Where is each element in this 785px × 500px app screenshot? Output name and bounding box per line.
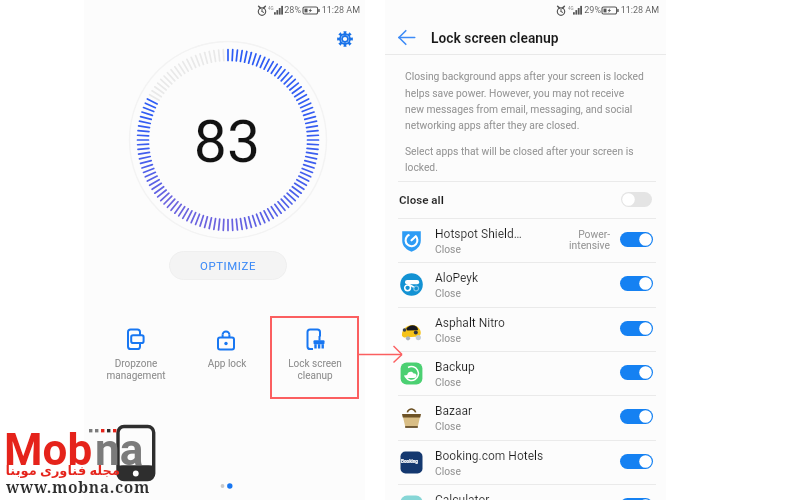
button[interactable]: Backup	[385, 351, 666, 395]
staticText: OPTIMIZE	[200, 259, 257, 272]
button[interactable]: Calculator	[385, 484, 666, 500]
button[interactable]: Back	[396, 26, 419, 49]
button[interactable]: Booking	[385, 440, 666, 484]
button[interactable]: Toggle Booking.com Hotels	[620, 454, 653, 469]
staticText: Booking	[401, 459, 418, 464]
staticText: AloPeyk	[435, 271, 479, 285]
button[interactable]: Asphalt Nitro	[385, 307, 666, 351]
staticText: networking apps after they are closed.	[405, 119, 580, 131]
staticText: na	[95, 424, 144, 476]
staticText: Close	[435, 376, 461, 388]
staticText: Close	[435, 332, 461, 344]
staticText: intensive	[545, 239, 610, 251]
staticText: Close	[435, 287, 461, 299]
button[interactable]: Dropzone	[86, 322, 186, 386]
staticText: App lock	[177, 358, 277, 370]
button[interactable]: Settings	[334, 28, 356, 50]
button[interactable]: Bazaar	[385, 395, 666, 439]
staticText: Dropzone	[86, 358, 186, 370]
button[interactable]: Toggle AloPeyk	[620, 276, 653, 291]
button[interactable]: Lock screen	[265, 322, 365, 386]
staticText: 28%	[264, 5, 301, 16]
staticText: Close	[435, 465, 461, 477]
button[interactable]: Toggle Bazaar	[620, 409, 653, 424]
button[interactable]: Toggle Hotspot Shield…	[620, 232, 653, 247]
staticText: cleanup	[265, 370, 365, 382]
staticText: management	[86, 370, 186, 382]
staticText: Bazaar	[435, 404, 473, 418]
staticText: Mob	[4, 424, 93, 476]
button[interactable]: Hotspot Shield…	[385, 218, 666, 262]
button[interactable]: Toggle Backup	[620, 365, 653, 380]
staticText: 11:28 AM	[280, 5, 360, 16]
staticText: 4G	[568, 6, 574, 11]
staticText: www.mobna.com	[6, 476, 150, 497]
staticText: Booking.com Hotels	[435, 449, 544, 463]
staticText: Closing background apps after your scree…	[405, 70, 644, 82]
staticText: Power-	[545, 228, 610, 240]
button[interactable]: Close all	[385, 181, 666, 218]
staticText: 11:28 AM	[579, 5, 659, 16]
button[interactable]: Toggle Asphalt Nitro	[620, 321, 653, 336]
button[interactable]: Toggle Calculator	[620, 498, 653, 500]
staticText: Hotspot Shield…	[435, 227, 522, 241]
staticText: new messages from email, messaging, and …	[405, 103, 633, 115]
staticText: مجله فناوری موبنا	[4, 463, 120, 478]
staticText: Lock screen cleanup	[431, 30, 559, 46]
staticText: Asphalt Nitro	[435, 316, 505, 330]
staticText: Close	[435, 420, 461, 432]
staticText: Select apps that will be closed after yo…	[405, 145, 634, 157]
staticText: 29%	[564, 5, 601, 16]
button[interactable]: Close all, off	[621, 192, 652, 207]
staticText: helps save power. However, you may not r…	[405, 87, 625, 99]
button[interactable]: AloPeyk	[385, 262, 666, 306]
staticText: locked.	[405, 161, 438, 173]
staticText: Close	[435, 243, 461, 255]
staticText: Lock screen	[265, 358, 365, 370]
button[interactable]: OPTIMIZE	[169, 251, 287, 280]
staticText: 83	[167, 107, 287, 176]
button[interactable]: App lock	[177, 322, 277, 386]
staticText: Close all	[399, 193, 444, 207]
staticText: Calculator	[435, 493, 490, 500]
staticText: Backup	[435, 360, 475, 374]
staticText: 4G	[268, 6, 274, 11]
